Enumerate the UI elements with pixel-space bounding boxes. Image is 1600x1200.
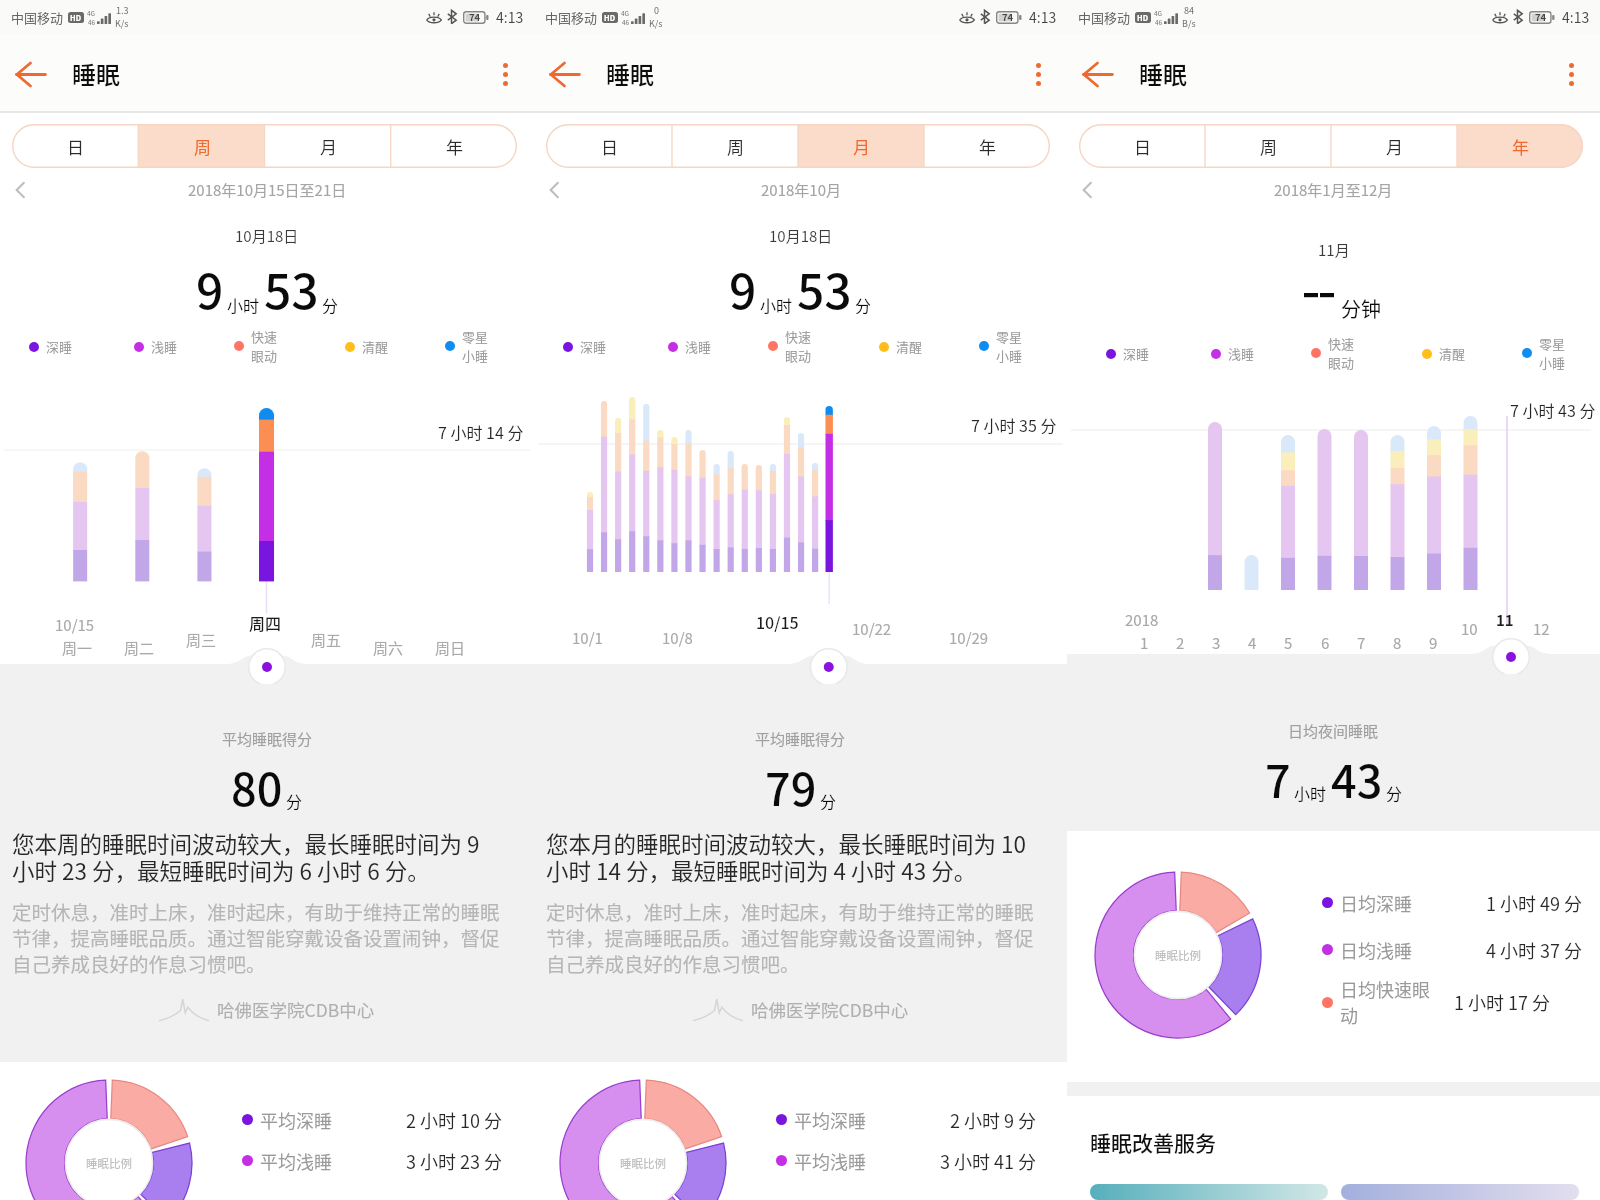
button[interactable]: 年 (391, 124, 517, 168)
button[interactable]: 平均深睡 (242, 1096, 502, 1143)
staticText: 4 (1248, 632, 1257, 654)
staticText: 43 (1331, 746, 1383, 811)
staticText: 74 (469, 10, 481, 24)
staticText: 10/1 (572, 627, 603, 649)
staticText: K/s (649, 17, 663, 30)
staticText: 小睡 (996, 346, 1023, 365)
staticText: 12 (1533, 618, 1550, 640)
staticText: 睡眠 (1139, 56, 1187, 91)
staticText: 46 (1155, 17, 1163, 26)
staticText: 4 小时 37 分 (1470, 937, 1582, 963)
button[interactable]: 日均快速眼动 (1322, 973, 1582, 1031)
button[interactable]: Previous period (1073, 175, 1103, 205)
staticText: 平均深睡 (794, 1107, 924, 1133)
staticText: 快速 (785, 327, 812, 346)
button[interactable]: More options (1016, 52, 1060, 96)
staticText: 月 (853, 134, 870, 159)
staticText: 4G (621, 8, 630, 17)
button[interactable]: Scrub chart (1067, 646, 1600, 674)
staticText: 深睡 (46, 337, 73, 356)
button[interactable]: More options (1549, 52, 1593, 96)
button[interactable]: Previous period (6, 175, 36, 205)
button[interactable]: 日 (546, 124, 672, 168)
button[interactable]: 月 (265, 124, 391, 168)
button[interactable]: 平均浅睡 (242, 1143, 502, 1178)
staticText: HD (604, 12, 616, 23)
staticText: 1 小时 49 分 (1470, 890, 1582, 916)
staticText: 日 (1134, 134, 1151, 159)
staticText: 日 (67, 134, 84, 159)
button[interactable]: 周 (672, 124, 798, 168)
button[interactable]: 平均浅睡 (776, 1143, 1036, 1178)
staticText: 周六 (373, 637, 404, 659)
staticText: K/s (115, 17, 129, 30)
button[interactable]: 月 (798, 124, 924, 168)
staticText: 小时 (760, 293, 793, 316)
staticText: 日均浅睡 (1340, 937, 1470, 963)
button[interactable]: 年 (1457, 124, 1583, 168)
staticText: 定时休息，准时上床，准时起床，有助于维持正常的睡眠节律，提高睡眠品质。通过智能穿… (546, 897, 1047, 977)
staticText: 8 (1393, 632, 1402, 654)
staticText: 中国移动 (1078, 8, 1131, 27)
staticText: 睡眠比例 (1155, 947, 1201, 964)
button[interactable]: Previous period (540, 175, 570, 205)
staticText: 平均浅睡 (794, 1148, 924, 1174)
staticText: 2018年10月 (761, 179, 841, 201)
staticText: 11 (1496, 609, 1514, 631)
button[interactable]: 日均浅睡 (1322, 926, 1582, 973)
staticText: 4G (87, 8, 96, 17)
staticText: 睡眠 (606, 56, 654, 91)
button[interactable]: 日 (1079, 124, 1205, 168)
staticText: 周三 (186, 629, 217, 651)
staticText: 6 (1321, 632, 1330, 654)
staticText: 周二 (124, 637, 155, 659)
staticText: 小时 (1294, 781, 1327, 804)
staticText: 周 (1260, 134, 1277, 159)
staticText: 80 (231, 754, 283, 819)
button[interactable]: 周 (139, 124, 265, 168)
button[interactable]: 月 (1331, 124, 1457, 168)
button[interactable]: 平均深睡 (776, 1096, 1036, 1143)
button[interactable]: Scrub chart (534, 656, 1067, 684)
staticText: 10月18日 (235, 225, 299, 247)
staticText: 周一 (62, 637, 93, 659)
staticText: 7 (1357, 632, 1366, 654)
staticText: 10/15 (55, 614, 95, 636)
button[interactable]: 周 (1205, 124, 1331, 168)
button[interactable]: Back (541, 51, 587, 97)
staticText: 浅睡 (151, 337, 178, 356)
button[interactable]: Back (1074, 51, 1120, 97)
staticText: 周 (194, 134, 211, 159)
button[interactable]: Scrub chart (0, 656, 534, 684)
button[interactable]: Back (7, 51, 53, 97)
staticText: 分 (286, 789, 303, 812)
button[interactable]: 睡眠课程 (1341, 1184, 1579, 1200)
staticText: 2 小时 9 分 (924, 1107, 1036, 1133)
staticText: 您本月的睡眠时间波动较大，最长睡眠时间为 10 小时 14 分，最短睡眠时间为 … (546, 827, 1033, 886)
staticText: 3 小时 23 分 (390, 1148, 502, 1174)
staticText: 眼动 (1328, 353, 1355, 372)
staticText: 4:13 (1562, 7, 1590, 27)
button[interactable]: 年 (924, 124, 1050, 168)
staticText: 4:13 (496, 7, 524, 27)
staticText: 浅睡 (1228, 344, 1255, 363)
staticText: 0 (654, 4, 659, 17)
staticText: 年 (446, 134, 463, 159)
staticText: 定时休息，准时上床，准时起床，有助于维持正常的睡眠节律，提高睡眠品质。通过智能穿… (12, 897, 514, 977)
staticText: 清醒 (1439, 344, 1466, 363)
staticText: 分 (820, 789, 837, 812)
staticText: 79 (765, 754, 817, 819)
staticText: 10月18日 (769, 225, 833, 247)
button[interactable]: 日 (12, 124, 139, 168)
staticText: 9 (729, 253, 757, 323)
button[interactable]: More options (483, 52, 527, 96)
button[interactable]: 日均深睡 (1322, 879, 1582, 926)
staticText: 74 (1002, 10, 1014, 24)
staticText: 1.3 (116, 4, 129, 17)
staticText: 深睡 (1123, 344, 1150, 363)
staticText: 哈佛医学院CDB中心 (751, 997, 909, 1022)
staticText: 清醒 (896, 337, 923, 356)
button[interactable]: 助眠音乐 (1090, 1184, 1328, 1200)
staticText: 月 (320, 134, 337, 159)
staticText: 46 (88, 17, 96, 26)
